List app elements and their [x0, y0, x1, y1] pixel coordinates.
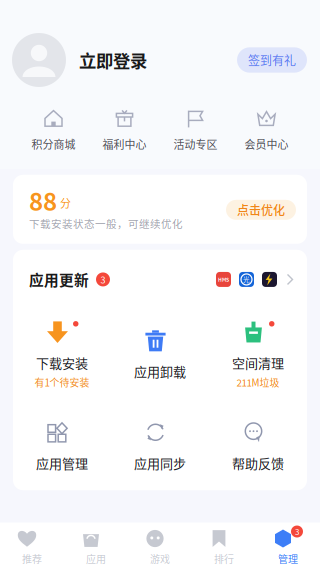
- button[interactable]: 应用: [64, 525, 128, 566]
- staticText: 应用同步: [134, 453, 186, 472]
- button[interactable]: 活动专区: [160, 109, 231, 152]
- button[interactable]: 应用同步: [111, 420, 209, 472]
- staticText: 福利中心: [102, 136, 146, 152]
- staticText: 排行: [214, 551, 234, 566]
- staticText: 签到有礼: [248, 51, 296, 69]
- staticText: 下载安装状态一般，可继续优化: [29, 216, 183, 231]
- staticText: 管理: [278, 551, 298, 566]
- staticText: 活动专区: [173, 136, 217, 152]
- button[interactable]: 帮助反馈: [209, 420, 307, 472]
- button[interactable]: 会员中心: [231, 109, 302, 152]
- button[interactable]: 推荐: [0, 525, 64, 566]
- staticText: 游戏: [150, 551, 170, 566]
- staticText: 帮助反馈: [232, 453, 284, 472]
- staticText: 211M垃圾: [236, 375, 279, 389]
- staticText: HMS: [218, 276, 229, 283]
- staticText: 立即登录: [79, 47, 147, 73]
- staticText: 下载安装: [36, 353, 88, 372]
- button[interactable]: 福利中心: [89, 109, 160, 152]
- staticText: 有1个待安装: [34, 375, 89, 389]
- staticText: 推荐: [22, 551, 42, 566]
- button[interactable]: 游戏: [128, 525, 192, 566]
- staticText: 3: [295, 526, 299, 537]
- button[interactable]: 排行: [192, 525, 256, 566]
- button[interactable]: 下载安装: [13, 320, 111, 389]
- staticText: 应用更新: [29, 269, 89, 290]
- staticText: 3: [100, 273, 105, 286]
- staticText: 积分商城: [31, 136, 75, 152]
- staticText: 应用卸载: [134, 362, 186, 381]
- staticText: 点击优化: [237, 201, 285, 218]
- button[interactable]: 3: [256, 525, 320, 566]
- button[interactable]: 应用管理: [13, 420, 111, 472]
- staticText: 空间清理: [232, 353, 284, 372]
- staticText: 应用管理: [36, 453, 88, 472]
- button[interactable]: 点击优化: [226, 200, 296, 220]
- button[interactable]: 签到有礼: [237, 47, 307, 73]
- button[interactable]: 空间清理: [209, 320, 307, 389]
- staticText: 光: [243, 275, 250, 284]
- button[interactable]: 积分商城: [18, 109, 89, 152]
- staticText: 分: [60, 195, 71, 211]
- staticText: 88: [29, 183, 57, 218]
- button[interactable]: 应用卸载: [111, 329, 209, 381]
- staticText: 应用: [86, 551, 106, 566]
- staticText: 会员中心: [244, 136, 288, 152]
